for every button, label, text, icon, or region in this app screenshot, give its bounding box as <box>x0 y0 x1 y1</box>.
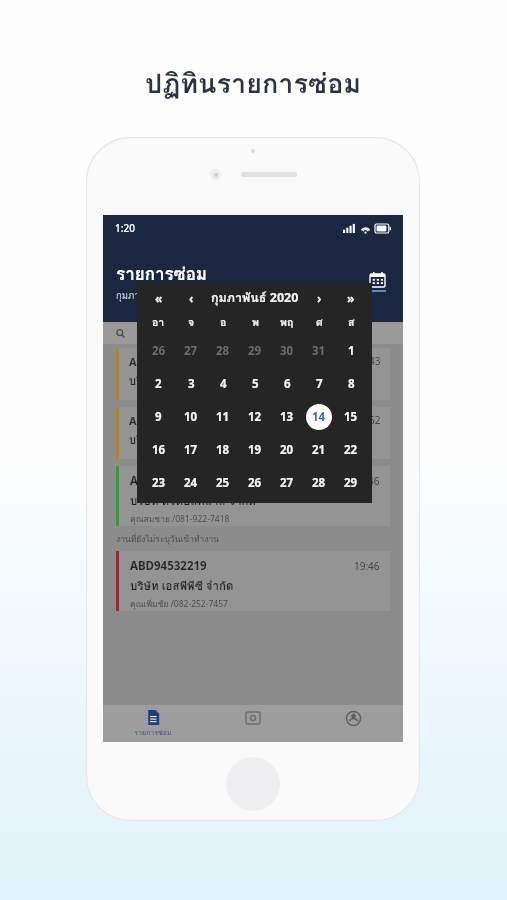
staticText: 1 <box>348 343 355 359</box>
staticText: ABD94532220 <box>130 473 354 489</box>
staticText: 25 <box>216 475 230 491</box>
staticText: ส <box>348 314 355 331</box>
staticText: 27 <box>280 475 294 491</box>
staticText: ศ <box>316 314 323 331</box>
staticText: 24 <box>184 475 198 491</box>
button[interactable]: Camera <box>203 705 303 742</box>
button[interactable]: 21 <box>303 433 335 466</box>
staticText: คุณสมชาย /081-922-7418 <box>130 512 230 526</box>
button[interactable]: 19 <box>239 433 271 466</box>
button[interactable]: 10 <box>175 400 207 433</box>
staticText: 26 <box>248 475 262 491</box>
button[interactable]: 29 <box>335 466 367 499</box>
staticText: 3 <box>188 376 195 392</box>
button[interactable]: 7 <box>303 367 335 400</box>
button[interactable]: 26 <box>239 466 271 499</box>
button[interactable]: 23 <box>142 466 175 499</box>
other: Search <box>116 329 125 338</box>
staticText: 22 <box>344 442 358 458</box>
staticText: พ <box>252 314 259 331</box>
button[interactable]: 14 <box>303 400 335 433</box>
button[interactable]: 5 <box>239 367 271 400</box>
button[interactable]: 4 <box>207 367 239 400</box>
button[interactable]: 17 <box>175 433 207 466</box>
staticText: 4 <box>220 376 227 392</box>
button[interactable]: 15 <box>335 400 367 433</box>
button[interactable]: Calendar <box>365 268 390 296</box>
button[interactable]: 22 <box>335 433 367 466</box>
button[interactable]: 13 <box>271 400 303 433</box>
button[interactable]: 1 <box>335 334 367 367</box>
button[interactable]: 27 <box>271 466 303 499</box>
staticText: 10:52 <box>355 413 381 427</box>
button[interactable]: 27 <box>175 334 207 367</box>
staticText: 29 <box>248 343 262 359</box>
staticText: 09:46 <box>354 474 380 488</box>
staticText: รายการซ่อม <box>116 260 208 287</box>
button[interactable]: 28 <box>303 466 335 499</box>
staticText: 16 <box>152 442 166 458</box>
staticText: 12 <box>248 409 262 425</box>
button[interactable]: ABD94532219 <box>116 551 390 611</box>
staticText: 23 <box>152 475 166 491</box>
staticText: 1:20 <box>115 221 135 235</box>
staticText: 17 <box>184 442 198 458</box>
button[interactable]: ABD94532222 <box>116 348 390 400</box>
staticText: ปฏิทินรายการซ่อม <box>145 62 362 105</box>
staticText: 9 <box>155 409 162 425</box>
button[interactable]: 31 <box>303 334 335 367</box>
button[interactable]: 28 <box>207 334 239 367</box>
staticText: 09:43 <box>355 354 381 368</box>
button[interactable]: 11 <box>207 400 239 433</box>
staticText: 8 <box>348 376 355 392</box>
staticText: 13 <box>280 409 294 425</box>
staticText: 11 <box>216 409 230 425</box>
staticText: พฤ <box>280 314 294 331</box>
button[interactable]: Navigate ‹ <box>175 287 207 309</box>
staticText: 10 <box>184 409 198 425</box>
button[interactable]: Profile <box>303 705 403 742</box>
staticText: « <box>155 290 163 306</box>
button[interactable]: 30 <box>271 334 303 367</box>
button[interactable]: 3 <box>175 367 207 400</box>
other: Repair list <box>146 710 161 725</box>
button[interactable]: 12 <box>239 400 271 433</box>
button[interactable]: ABD94532220 <box>116 466 390 526</box>
button[interactable]: Repair list <box>103 705 203 742</box>
button[interactable]: Navigate « <box>142 287 175 309</box>
staticText: 27 <box>184 343 198 359</box>
staticText: กุมภาพันธ์ 2020 <box>116 288 183 303</box>
button[interactable]: 24 <box>175 466 207 499</box>
button[interactable]: ABD94532221 <box>116 407 390 459</box>
staticText: บริษัท <box>129 372 157 389</box>
button[interactable]: 26 <box>142 334 175 367</box>
button[interactable]: 9 <box>142 400 175 433</box>
button[interactable]: Navigate » <box>335 287 367 309</box>
button[interactable]: 18 <box>207 433 239 466</box>
staticText: 6 <box>284 376 291 392</box>
staticText: 26 <box>152 343 166 359</box>
other: Profile <box>346 711 361 726</box>
staticText: 30 <box>280 343 294 359</box>
button[interactable]: 2 <box>142 367 175 400</box>
staticText: 18 <box>216 442 230 458</box>
button[interactable]: 29 <box>239 334 271 367</box>
staticText: ‹ <box>189 290 194 306</box>
staticText: » <box>347 290 355 306</box>
staticText: 21 <box>312 442 326 458</box>
button[interactable]: 20 <box>271 433 303 466</box>
button[interactable]: Navigate › <box>303 287 335 309</box>
button[interactable]: 8 <box>335 367 367 400</box>
staticText: 20 <box>280 442 294 458</box>
staticText: 31 <box>312 343 326 359</box>
staticText: รายการซ่อม <box>134 727 172 738</box>
staticText: จ <box>188 314 195 331</box>
staticText: กุมภาพันธ์ 2020 <box>211 288 299 308</box>
button[interactable]: 6 <box>271 367 303 400</box>
button[interactable]: 16 <box>142 433 175 466</box>
button[interactable]: 25 <box>207 466 239 499</box>
staticText: บริษัท ดิจิตอลคลาส จำกัด <box>130 492 257 510</box>
button[interactable]: Search <box>103 322 403 344</box>
staticText: คุณเพิ่มชัย /082-252-7457 <box>130 597 228 611</box>
staticText: 28 <box>216 343 230 359</box>
